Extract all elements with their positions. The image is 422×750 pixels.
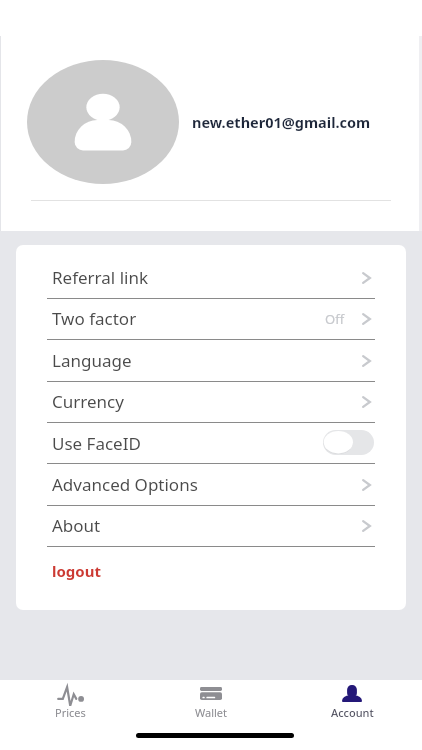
- button[interactable]: Two factor: [16, 298, 406, 339]
- button[interactable]: Currency: [16, 381, 406, 422]
- staticText: About: [52, 514, 101, 537]
- staticText: Language: [52, 349, 132, 372]
- button[interactable]: Use FaceID: [16, 423, 406, 464]
- staticText: Two factor: [52, 307, 137, 330]
- staticText: logout: [52, 561, 101, 581]
- staticText: Account: [331, 705, 374, 720]
- staticText: Use FaceID: [52, 432, 141, 455]
- button[interactable]: Wallet: [161, 680, 261, 732]
- button[interactable]: Advanced Options: [16, 464, 406, 505]
- staticText: Currency: [52, 390, 124, 413]
- button[interactable]: logout: [16, 551, 406, 591]
- button[interactable]: Referral link: [16, 257, 406, 298]
- staticText: Off: [325, 310, 345, 328]
- staticText: Prices: [55, 705, 86, 720]
- button[interactable]: Prices: [20, 680, 120, 732]
- button[interactable]: Account: [302, 680, 402, 732]
- staticText: Referral link: [52, 266, 148, 289]
- staticText: Wallet: [195, 705, 228, 720]
- button[interactable]: Language: [16, 340, 406, 381]
- button[interactable]: About: [16, 505, 406, 546]
- staticText: Advanced Options: [52, 473, 198, 496]
- staticText: new.ether01@gmail.com: [192, 112, 371, 132]
